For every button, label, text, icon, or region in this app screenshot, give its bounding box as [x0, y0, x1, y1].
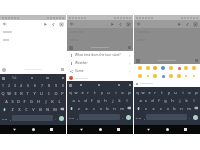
button[interactable]: B — [37, 105, 44, 113]
button[interactable]: f — [88, 96, 95, 104]
button[interactable]: x — [83, 104, 90, 112]
button[interactable]: l — [123, 96, 130, 104]
button[interactable]: Emoji — [183, 73, 189, 79]
button[interactable]: Emoji — [176, 65, 182, 71]
button[interactable]: s — [76, 96, 82, 104]
button[interactable]: j — [109, 96, 116, 104]
button[interactable]: H — [35, 97, 42, 105]
button[interactable]: n — [178, 104, 185, 112]
button[interactable]: e — [79, 88, 85, 96]
button[interactable]: More options — [125, 21, 131, 27]
button[interactable]: E — [12, 89, 18, 97]
button[interactable]: Emoji — [191, 65, 197, 71]
button[interactable]: Back — [10, 125, 19, 134]
button[interactable]: Z — [8, 105, 16, 113]
button[interactable]: Emoji — [160, 73, 166, 79]
button[interactable]: l — [190, 96, 197, 104]
button[interactable]: U — [38, 89, 45, 97]
button[interactable]: Send — [176, 21, 182, 27]
button[interactable]: b — [171, 104, 178, 112]
button[interactable]: z — [142, 104, 150, 112]
button[interactable]: k — [116, 96, 123, 104]
button[interactable]: C — [23, 105, 30, 113]
button[interactable]: n — [111, 104, 118, 112]
button[interactable]: y — [165, 88, 172, 96]
button[interactable]: G — [28, 97, 35, 105]
button[interactable]: Emoji — [183, 65, 189, 71]
button[interactable]: Y — [31, 89, 38, 97]
button[interactable]: f — [155, 96, 162, 104]
button[interactable]: a — [70, 96, 76, 104]
button[interactable]: Recent apps — [114, 125, 123, 134]
button[interactable]: 3 — [12, 81, 18, 89]
button[interactable]: More options — [58, 21, 64, 27]
button[interactable]: V — [30, 105, 37, 113]
button[interactable]: Recent apps — [181, 125, 190, 134]
button[interactable]: m — [118, 104, 125, 112]
button[interactable]: Back — [69, 21, 75, 27]
button[interactable]: Send — [109, 21, 115, 27]
button[interactable]: , — [8, 113, 12, 123]
button[interactable]: a — [137, 96, 143, 104]
button[interactable]: Emoji — [152, 73, 158, 79]
button[interactable]: . — [187, 112, 191, 122]
button[interactable]: p — [193, 88, 200, 96]
button[interactable]: K — [49, 97, 56, 105]
button[interactable]: Shift — [0, 105, 8, 113]
button[interactable]: u — [105, 88, 112, 96]
button[interactable]: w — [73, 88, 79, 96]
button[interactable]: h — [169, 96, 176, 104]
button[interactable]: P — [59, 89, 66, 97]
button[interactable]: Q — [0, 89, 6, 97]
button[interactable]: N — [44, 105, 51, 113]
button[interactable]: j — [176, 96, 183, 104]
button[interactable]: Back — [136, 21, 142, 27]
button[interactable]: A — [3, 97, 9, 105]
button[interactable]: x — [150, 104, 157, 112]
button[interactable]: Backspace — [125, 104, 133, 112]
button[interactable]: s — [143, 96, 149, 104]
button[interactable]: M — [51, 105, 58, 113]
button[interactable]: Backspace — [192, 104, 200, 112]
button[interactable]: h — [102, 96, 109, 104]
button[interactable]: Shift — [134, 104, 142, 112]
button[interactable]: Send — [42, 21, 48, 27]
button[interactable]: Emoji — [145, 65, 151, 71]
button[interactable]: 0 — [59, 81, 66, 89]
button[interactable]: b — [104, 104, 111, 112]
button[interactable]: w — [140, 88, 146, 96]
button[interactable]: c — [157, 104, 164, 112]
button[interactable]: What time does the tour start? — [69, 51, 131, 59]
button[interactable]: d — [82, 96, 88, 104]
button[interactable]: Enter — [124, 112, 132, 122]
button[interactable]: Back — [77, 125, 86, 134]
button[interactable]: ?123 — [68, 112, 75, 122]
button[interactable]: Emoji — [168, 65, 174, 71]
button[interactable]: q — [134, 88, 140, 96]
button[interactable]: t — [158, 88, 165, 96]
button[interactable]: Recent apps — [47, 125, 56, 134]
button[interactable]: Emoji — [145, 73, 151, 79]
button[interactable]: Emoji — [176, 73, 182, 79]
button[interactable]: ?123 — [135, 112, 142, 122]
button[interactable]: Home — [163, 125, 172, 134]
button[interactable]: i — [112, 88, 119, 96]
button[interactable]: Emoji — [168, 73, 174, 79]
button[interactable]: Enter — [57, 113, 65, 123]
button[interactable]: u — [172, 88, 179, 96]
button[interactable]: Shift — [67, 104, 75, 112]
button[interactable]: z — [75, 104, 83, 112]
button[interactable]: Attach file — [184, 21, 190, 27]
button[interactable]: o — [186, 88, 193, 96]
button[interactable]: Emoji — [152, 65, 158, 71]
button[interactable]: Attach file — [117, 21, 123, 27]
button[interactable]: 1 — [0, 81, 6, 89]
button[interactable]: 8 — [45, 81, 52, 89]
button[interactable]: v — [97, 104, 104, 112]
button[interactable]: D — [15, 97, 21, 105]
button[interactable]: e — [146, 88, 152, 96]
button[interactable]: v — [164, 104, 171, 112]
